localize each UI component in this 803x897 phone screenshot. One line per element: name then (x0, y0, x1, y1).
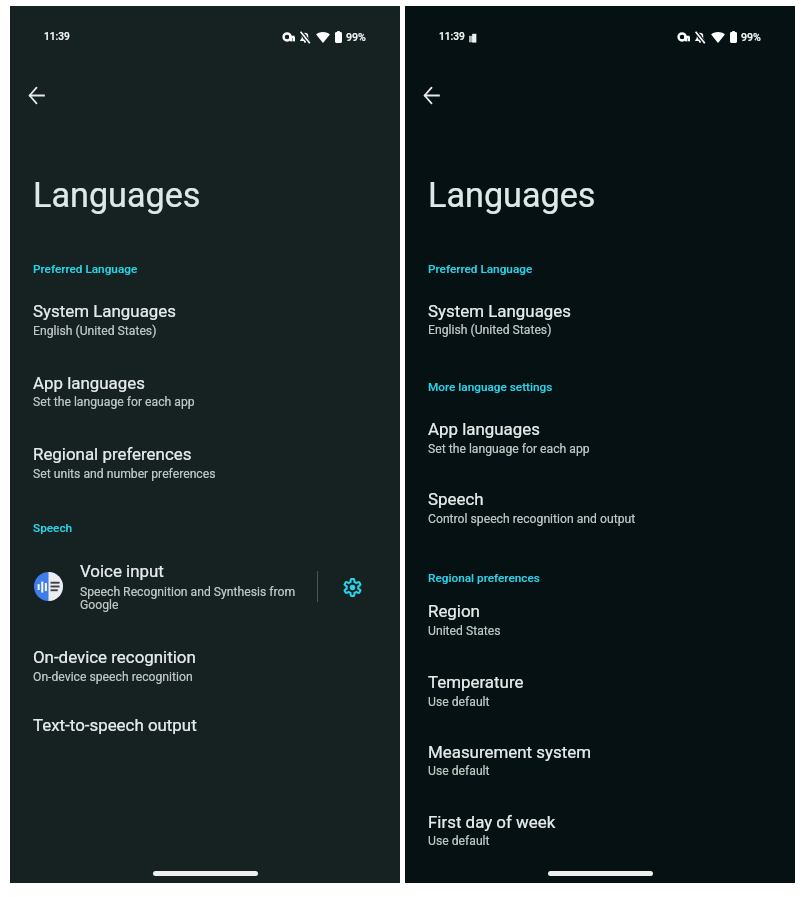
staticText: United States (428, 624, 768, 639)
staticText: Set units and number preferences (33, 467, 373, 482)
staticText: Set the language for each app (33, 395, 373, 410)
staticText: Languages (428, 175, 803, 216)
button[interactable] (10, 633, 400, 691)
staticText: Use default (428, 834, 768, 849)
staticText: Set the language for each app (428, 442, 768, 457)
button[interactable] (405, 658, 795, 716)
staticText: English (United States) (33, 324, 373, 339)
button[interactable] (10, 701, 400, 741)
staticText: On-device speech recognition (33, 670, 373, 685)
staticText: Use default (428, 764, 768, 779)
staticText: English (United States) (428, 323, 768, 338)
staticText: 11:39 (44, 31, 104, 43)
staticText: Languages (33, 175, 413, 216)
button[interactable] (405, 475, 795, 533)
staticText: Regional preferences (428, 571, 803, 585)
staticText: Use default (428, 695, 768, 710)
button[interactable] (405, 728, 795, 786)
button[interactable] (405, 587, 795, 645)
staticText: App languages (33, 373, 413, 393)
button[interactable] (405, 405, 795, 463)
button[interactable] (405, 287, 795, 345)
staticText: Region (428, 601, 803, 621)
staticText: Measurement system (428, 742, 803, 762)
staticText: More language settings (428, 380, 803, 394)
staticText: Text-to-speech output (33, 715, 413, 735)
button[interactable]: Back (13, 71, 61, 119)
staticText: Speech (428, 489, 803, 509)
staticText: 99% (346, 31, 396, 44)
button[interactable] (10, 287, 400, 345)
staticText: On-device recognition (33, 647, 413, 667)
staticText: Voice input (80, 561, 295, 581)
button[interactable] (405, 798, 795, 856)
staticText: Control speech recognition and output (428, 512, 768, 527)
staticText: App languages (428, 419, 803, 439)
staticText: 99% (741, 31, 791, 44)
staticText: Speech (33, 521, 413, 535)
staticText: System Languages (33, 301, 413, 321)
staticText: First day of week (428, 812, 803, 832)
staticText: Temperature (428, 672, 803, 692)
button[interactable] (20, 551, 306, 609)
staticText: Regional preferences (33, 444, 413, 464)
staticText: Preferred Language (428, 262, 803, 276)
staticText: System Languages (428, 301, 803, 321)
button[interactable]: Voice input settings (326, 561, 378, 613)
staticText: 11:39 (439, 31, 499, 43)
staticText: Speech Recognition and Synthesis from Go… (80, 585, 330, 612)
button[interactable] (10, 359, 400, 417)
button[interactable] (10, 430, 400, 488)
button[interactable]: Back (408, 71, 456, 119)
staticText: Preferred Language (33, 262, 413, 276)
